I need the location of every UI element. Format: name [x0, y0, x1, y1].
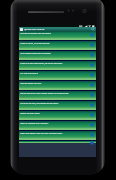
staticText: "Hope for the best, but prepare for the … — [20, 102, 89, 104]
button[interactable]: Search — [91, 27, 95, 31]
button[interactable]: "A picture is worth a thousand words" — [19, 141, 96, 143]
button[interactable]: "When the going gets tough, the tough ge… — [19, 61, 96, 71]
staticText: "No man is an island" — [20, 72, 89, 74]
button[interactable]: "The pen is mightier than the sword" — [19, 31, 96, 41]
button[interactable]: "No man is an island" — [19, 71, 96, 81]
staticText: "The squeaky wheel gets the grease" — [20, 52, 89, 54]
button[interactable]: App icon — [20, 28, 23, 31]
button[interactable]: "People who live in glass houses should … — [19, 91, 96, 101]
staticText: "The pen is mightier than the sword" — [20, 32, 89, 34]
button[interactable]: "Keep your friends close and your enemie… — [19, 131, 96, 141]
button[interactable]: "Hope for the best, but prepare for the … — [19, 101, 96, 111]
staticText: "When the going gets tough, the tough ge… — [20, 62, 89, 64]
button[interactable]: "Fortune favors the bold" — [19, 81, 96, 91]
button[interactable]: "Better late than never" — [19, 111, 96, 121]
button[interactable]: "Birds of a feather flock together" — [19, 121, 96, 131]
staticText: "When in Rome, do as the Romans" — [20, 42, 89, 44]
button[interactable]: "When in Rome, do as the Romans" — [19, 41, 96, 51]
staticText: "Birds of a feather flock together" — [20, 122, 89, 124]
staticText: "Better late than never" — [20, 112, 89, 114]
staticText: "Fortune favors the bold" — [20, 82, 89, 84]
staticText: "People who live in glass houses should … — [20, 92, 89, 94]
button[interactable]: "The squeaky wheel gets the grease" — [19, 51, 96, 61]
staticText: "Keep your friends close and your enemie… — [20, 132, 89, 134]
staticText: Quotes and Sayings — [24, 28, 45, 31]
